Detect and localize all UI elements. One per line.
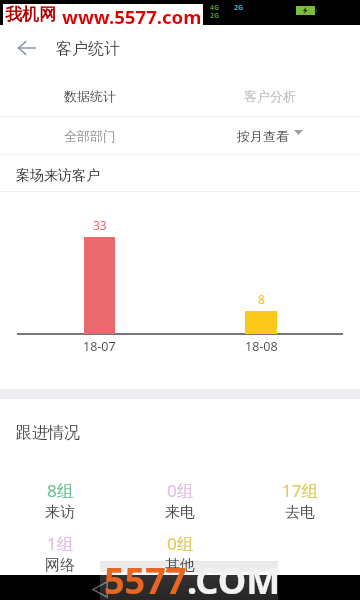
staticText: 1组 — [47, 532, 74, 555]
staticText: 案场来访客户 — [16, 167, 100, 185]
staticText: 网络 — [45, 556, 75, 575]
button[interactable]: 按月查看 — [180, 117, 360, 154]
staticText: 18-07 — [83, 338, 116, 355]
staticText: .COM — [187, 556, 281, 600]
button[interactable]: 客户分析 — [180, 75, 360, 116]
staticText: 8组 — [47, 479, 74, 502]
staticText: www.5577.com — [62, 4, 202, 25]
button[interactable]: 8组 — [0, 479, 120, 522]
staticText: 4G — [210, 3, 220, 13]
staticText: 0组 — [167, 479, 194, 502]
button[interactable]: 数据统计 — [0, 75, 180, 116]
staticText: 按月查看 — [237, 128, 289, 144]
staticText: 18-08 — [245, 338, 278, 355]
button[interactable]: 17组 — [240, 479, 360, 522]
button[interactable]: 0组 — [120, 479, 240, 522]
button[interactable]: Back — [3, 25, 49, 71]
staticText: 去电 — [285, 503, 315, 522]
staticText: 来访 — [45, 503, 75, 522]
staticText: 2G — [210, 11, 220, 21]
staticText: 33 — [93, 217, 107, 233]
staticText: 17组 — [282, 479, 319, 502]
staticText: 数据统计 — [64, 88, 116, 104]
button[interactable]: 0组 — [120, 532, 240, 575]
button[interactable]: 全部部门 — [0, 117, 180, 154]
staticText: 来电 — [165, 503, 195, 522]
staticText: 客户统计 — [56, 39, 120, 59]
staticText: 其他 — [165, 556, 195, 575]
staticText: 跟进情况 — [16, 423, 80, 443]
staticText: 全部部门 — [64, 128, 116, 144]
staticText: 0组 — [167, 532, 194, 555]
staticText: 客户分析 — [244, 88, 296, 104]
button[interactable]: 1组 — [0, 532, 120, 575]
staticText: 2G — [234, 3, 244, 13]
staticText: 8 — [258, 291, 265, 307]
button[interactable]: Back — [92, 581, 108, 598]
staticText: 我机网 — [5, 4, 56, 25]
staticText: 5577 — [104, 556, 187, 600]
